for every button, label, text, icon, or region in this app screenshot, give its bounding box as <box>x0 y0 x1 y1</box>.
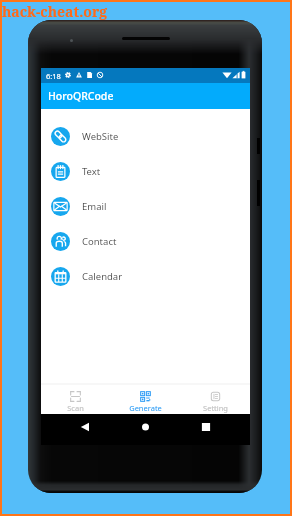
button[interactable]: Email <box>41 189 250 224</box>
button[interactable]: Scan <box>41 384 110 414</box>
staticText: Email <box>82 200 107 213</box>
button[interactable]: Contact <box>41 224 250 259</box>
staticText: 6:18 <box>46 71 61 81</box>
staticText: Setting <box>203 403 228 413</box>
staticText: Contact <box>82 235 117 248</box>
button[interactable]: Setting <box>180 384 250 414</box>
staticText: Text <box>82 165 101 178</box>
button[interactable]: WebSite <box>41 119 250 154</box>
staticText: Generate <box>129 403 162 413</box>
other: System navigation <box>41 414 250 445</box>
button[interactable]: Generate <box>110 384 180 414</box>
staticText: WebSite <box>82 130 119 143</box>
staticText: hack-cheat.org <box>2 2 108 21</box>
button[interactable]: Text <box>41 154 250 189</box>
staticText: HoroQRCode <box>48 89 114 103</box>
button[interactable]: Calendar <box>41 259 250 294</box>
staticText: Calendar <box>82 270 123 283</box>
staticText: Scan <box>67 403 84 413</box>
